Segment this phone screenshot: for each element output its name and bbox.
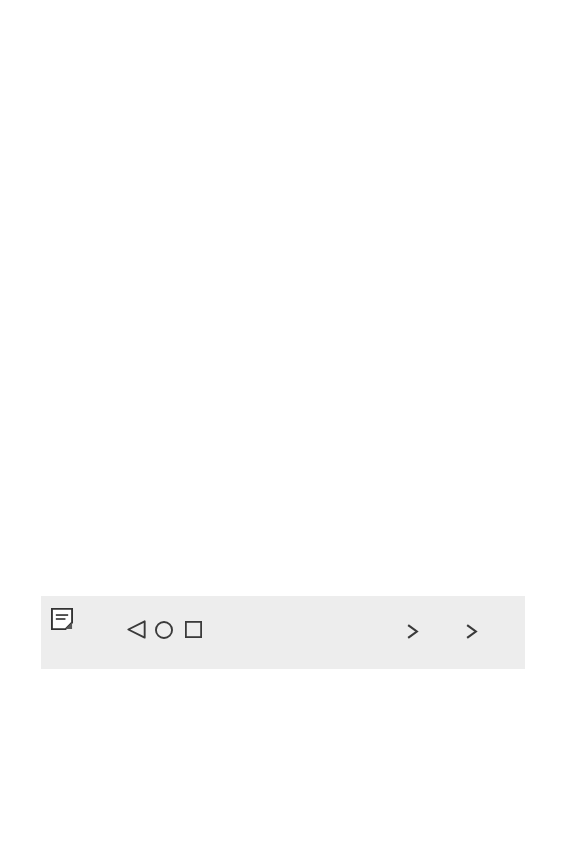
button[interactable]: Recent apps [185,621,202,638]
button[interactable]: Notes [51,608,73,630]
button[interactable]: Home [155,621,173,639]
button[interactable]: Forward [465,623,478,640]
button[interactable]: Back [127,620,146,639]
button[interactable]: Next [406,623,419,640]
